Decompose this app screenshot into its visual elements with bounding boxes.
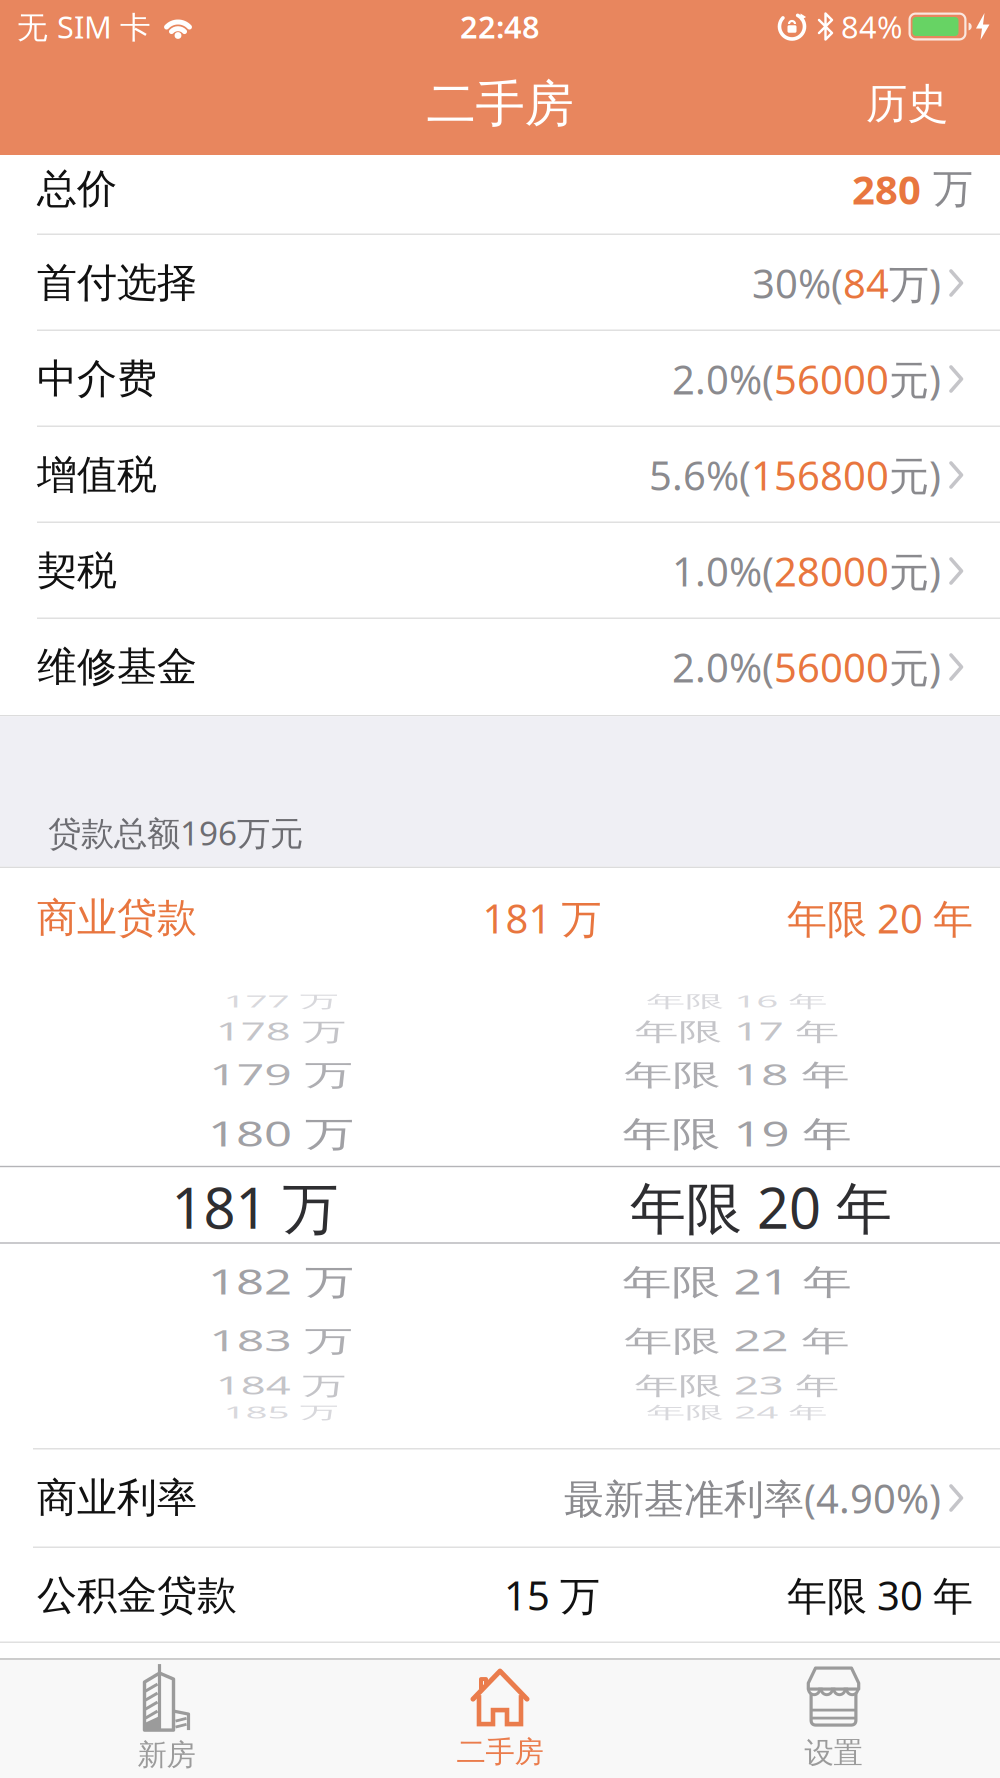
staticText: 二手房 <box>426 74 573 134</box>
staticText: 万 <box>921 164 973 213</box>
staticText: 177 万 <box>197 964 364 1038</box>
button[interactable]: 中介费 <box>0 331 1000 427</box>
button[interactable]: 商业利率 <box>0 1448 1000 1548</box>
staticText: 最新基准利率(4.90%) <box>564 1471 941 1524</box>
staticText: 1.0%( <box>672 544 774 597</box>
staticText: 178 万 <box>197 994 364 1068</box>
staticText: 年限 16 年 <box>606 964 868 1038</box>
staticText: 中介费 <box>37 354 157 403</box>
staticText: 年限 20 年 <box>630 1170 892 1244</box>
staticText: 契税 <box>37 546 117 595</box>
staticText: 181 万 <box>171 1170 338 1244</box>
staticText: 元) <box>889 352 941 405</box>
staticText: 年限 18 年 <box>606 1037 868 1111</box>
staticText: 184 万 <box>197 1348 364 1422</box>
staticText: 年限 22 年 <box>606 1303 868 1377</box>
staticText: 84% <box>841 6 902 47</box>
staticText: 增值税 <box>37 450 157 499</box>
staticText: 贷款总额196万元 <box>48 810 303 855</box>
staticText: 56000 <box>774 640 889 693</box>
staticText: 元) <box>889 448 941 501</box>
staticText: 22:48 <box>460 6 540 47</box>
staticText: 总价 <box>37 164 117 213</box>
staticText: 280 <box>852 162 921 215</box>
staticText: 185 万 <box>197 1375 364 1449</box>
staticText: 无 SIM 卡 <box>17 6 151 47</box>
button[interactable]: 历史 <box>866 79 1000 129</box>
staticText: 二手房 <box>456 1734 543 1770</box>
staticText: 179 万 <box>197 1037 364 1111</box>
staticText: 维修基金 <box>37 642 197 691</box>
staticText: 历史 <box>866 79 948 129</box>
staticText: 183 万 <box>197 1303 364 1377</box>
staticText: 180 万 <box>197 1096 364 1170</box>
staticText: 28000 <box>774 544 889 597</box>
staticText: 首付选择 <box>37 258 197 307</box>
staticText: 2.0%( <box>672 640 774 693</box>
button[interactable]: 维修基金 <box>0 619 1000 715</box>
button[interactable]: 增值税 <box>0 427 1000 523</box>
staticText: 5.6%( <box>649 448 751 501</box>
button[interactable]: 首付选择 <box>0 235 1000 331</box>
staticText: 年限 19 年 <box>606 1096 868 1170</box>
staticText: 万) <box>889 256 941 309</box>
staticText: 年限 17 年 <box>606 994 868 1068</box>
staticText: 182 万 <box>197 1244 364 1318</box>
staticText: 2.0%( <box>672 352 774 405</box>
staticText: 年限 24 年 <box>606 1375 868 1449</box>
staticText: 30%( <box>752 256 843 309</box>
staticText: 设置 <box>804 1735 862 1771</box>
staticText: 156800 <box>751 448 889 501</box>
staticText: 84 <box>843 256 889 309</box>
staticText: 年限 23 年 <box>606 1348 868 1422</box>
button[interactable]: 总价 <box>0 155 1000 235</box>
staticText: 56000 <box>774 352 889 405</box>
staticText: 元) <box>889 640 941 693</box>
staticText: 年限 21 年 <box>606 1244 868 1318</box>
staticText: 商业利率 <box>37 1473 197 1522</box>
staticText: 181 万 <box>482 891 601 944</box>
staticText: 年限 30 年 <box>787 1568 973 1621</box>
staticText: 元) <box>889 544 941 597</box>
staticText: 15 万 <box>504 1568 600 1621</box>
button[interactable]: 契税 <box>0 523 1000 619</box>
button[interactable]: 二手房 <box>333 1660 667 1778</box>
button[interactable]: 设置 <box>667 1660 1000 1778</box>
staticText: 年限 20 年 <box>787 891 973 944</box>
button[interactable]: 新房 <box>0 1660 333 1778</box>
staticText: 商业贷款 <box>37 893 197 942</box>
staticText: 新房 <box>137 1737 195 1773</box>
staticText: 公积金贷款 <box>37 1571 237 1620</box>
